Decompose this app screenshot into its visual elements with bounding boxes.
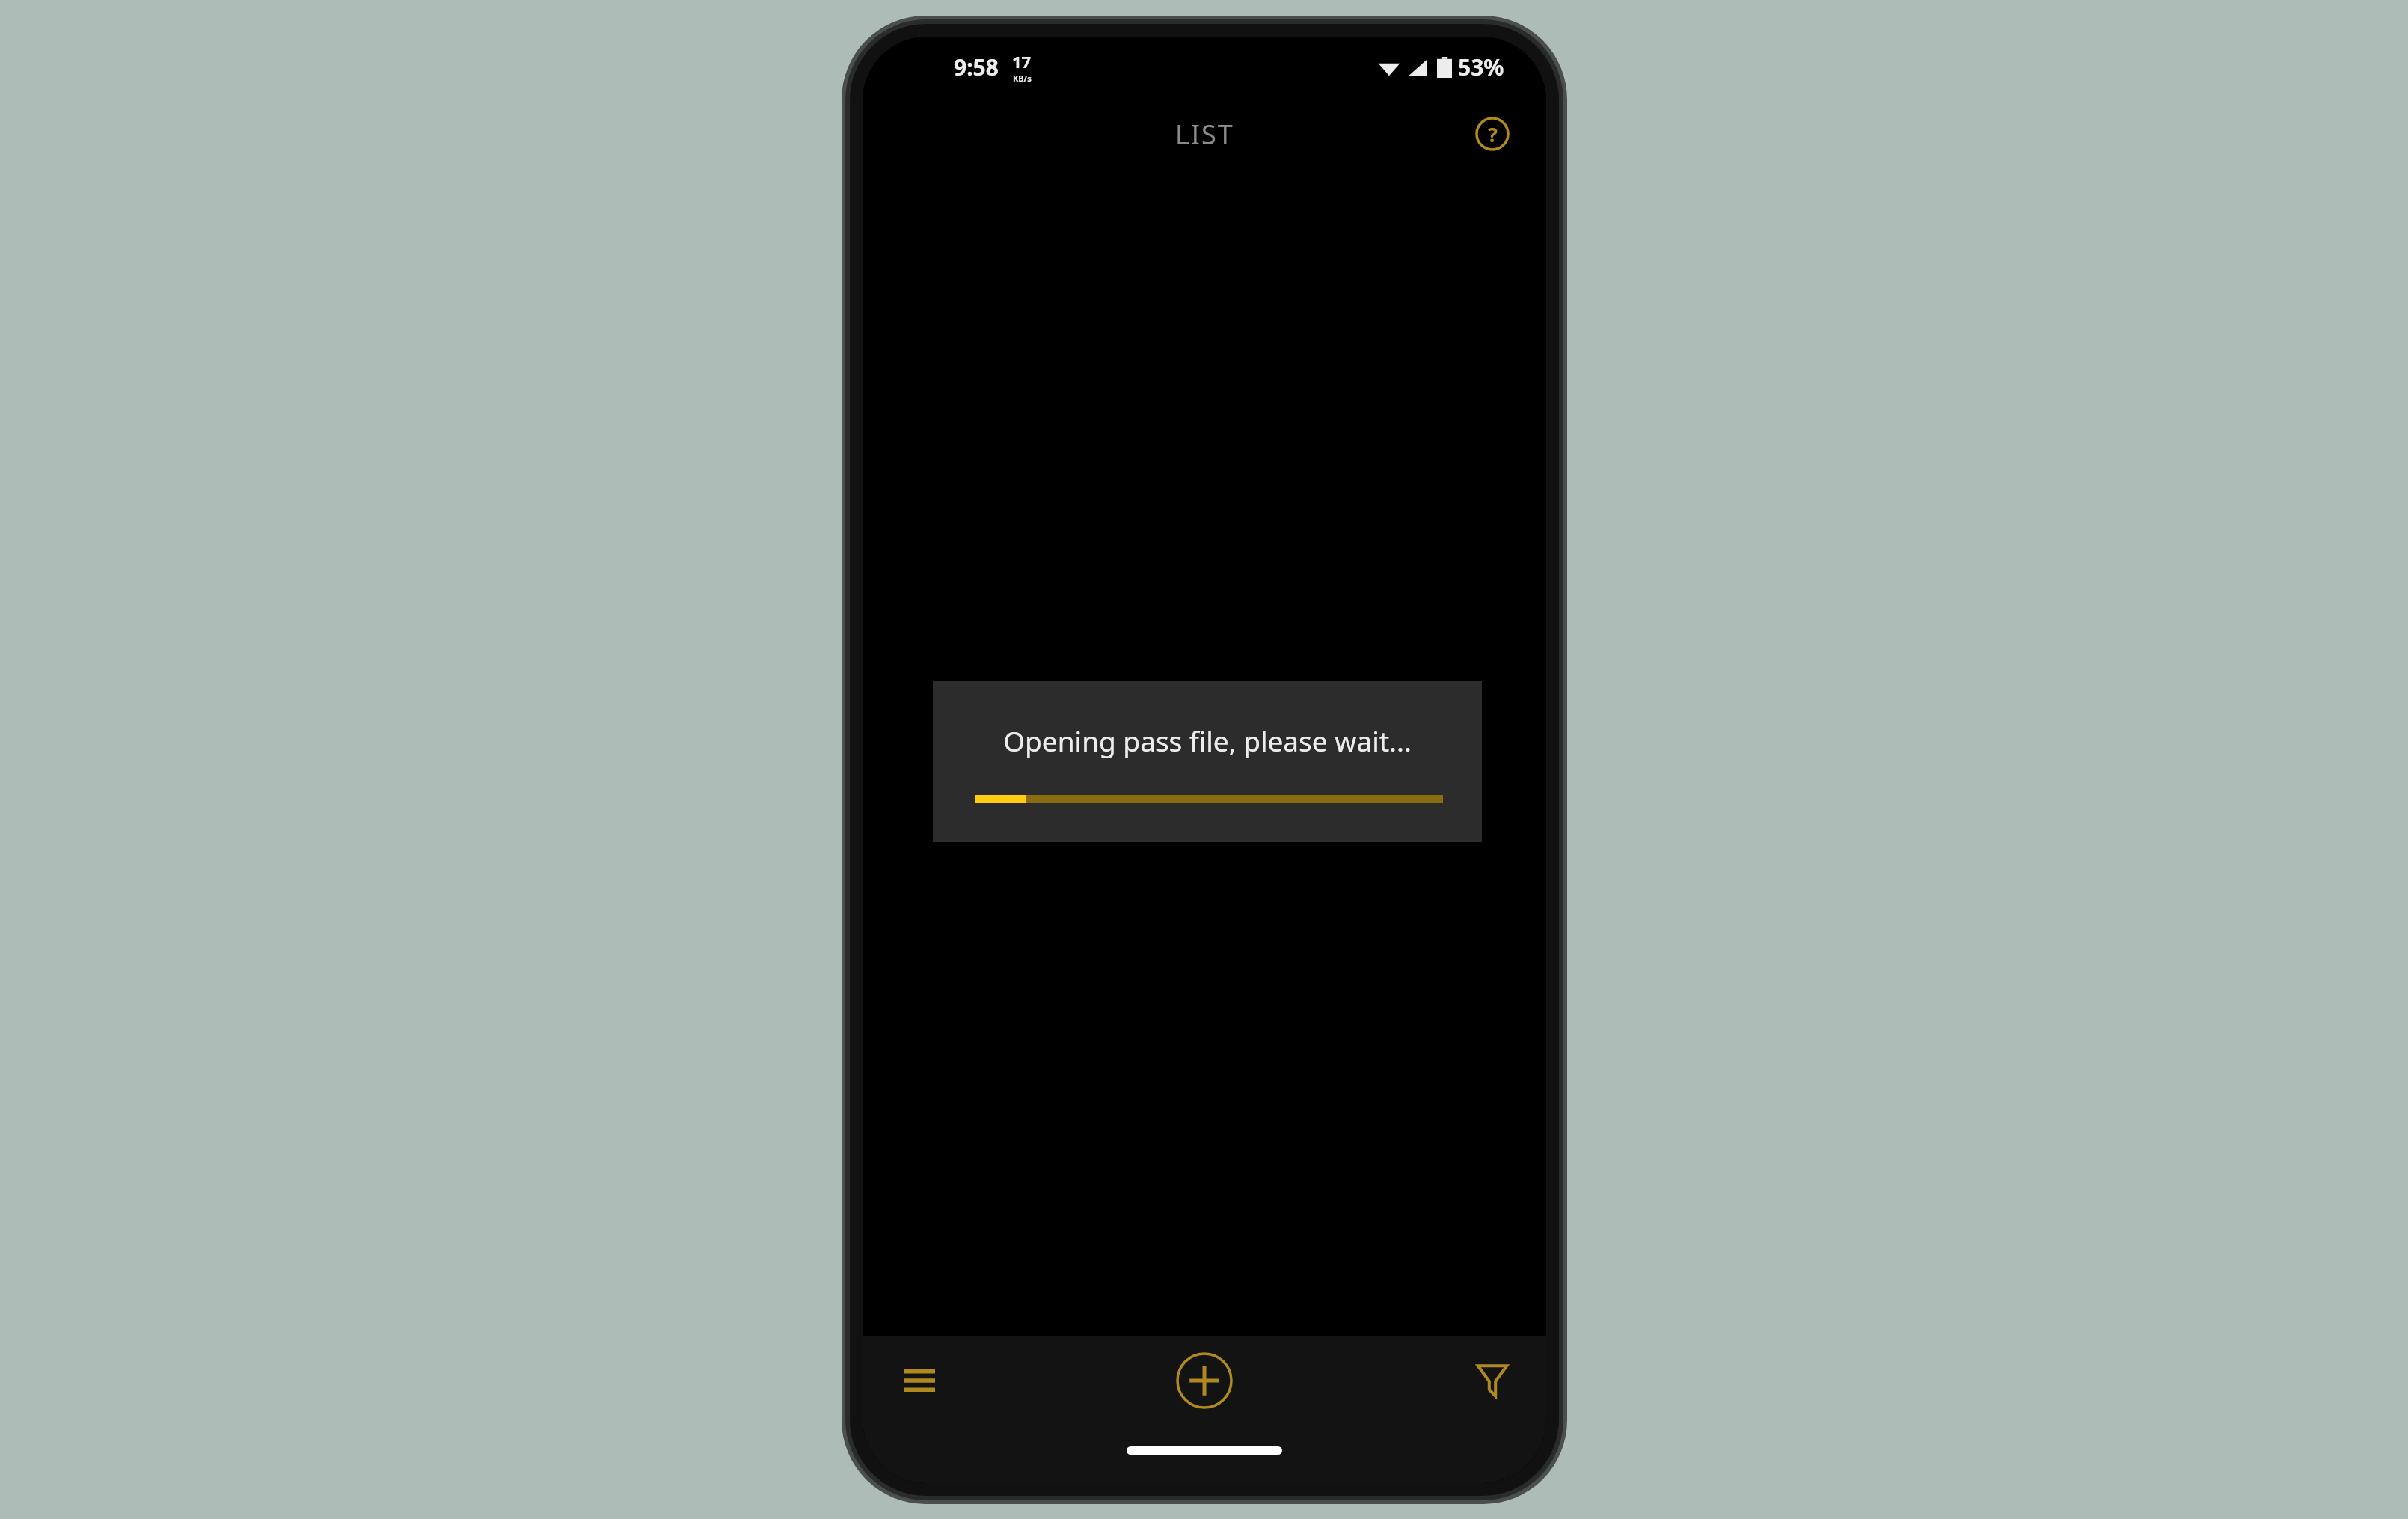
button[interactable]: Filter xyxy=(1458,1346,1527,1415)
button[interactable]: Add xyxy=(1167,1343,1242,1418)
button[interactable]: Help xyxy=(1468,110,1516,158)
staticText: ? xyxy=(1488,120,1498,148)
staticText: 9:58 xyxy=(954,52,999,82)
staticText: 53% xyxy=(1458,52,1504,82)
button[interactable]: Menu xyxy=(885,1346,954,1415)
staticText: KB/s xyxy=(1013,73,1032,84)
staticText: 17 xyxy=(1012,50,1032,73)
staticText: Opening pass file, please wait... xyxy=(1003,722,1412,759)
staticText: LIST xyxy=(1175,116,1234,153)
